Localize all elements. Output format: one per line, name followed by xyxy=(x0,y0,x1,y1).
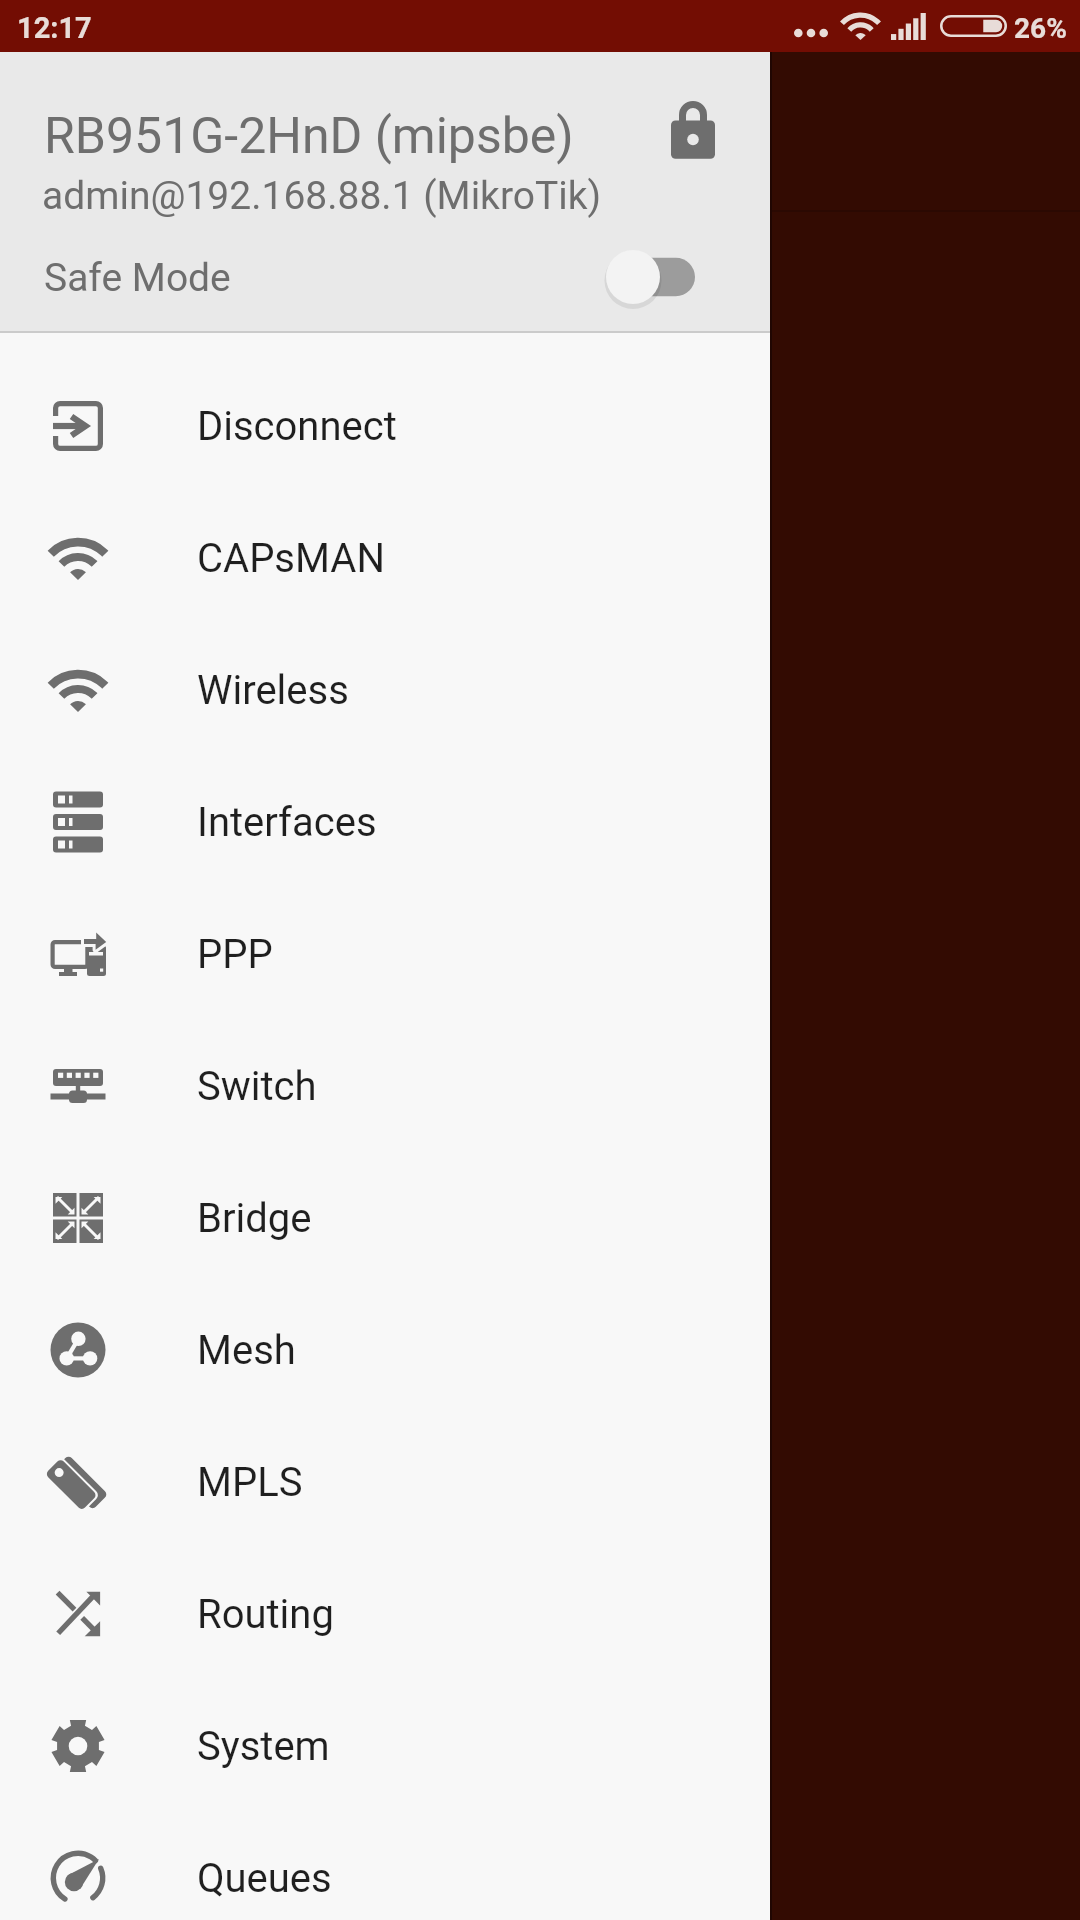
staticText: Queues xyxy=(197,1855,332,1902)
staticText: RB951G-2HnD (mipsbe) xyxy=(44,107,574,166)
staticText: MPLS xyxy=(197,1459,303,1506)
staticText: CAPsMAN xyxy=(197,535,385,582)
staticText: Interfaces xyxy=(197,799,377,846)
staticText: Mesh xyxy=(197,1327,296,1374)
button[interactable]: Wireless xyxy=(0,624,770,756)
staticText: Disconnect xyxy=(197,403,397,450)
button[interactable]: System xyxy=(0,1680,770,1812)
button[interactable]: Routing xyxy=(0,1548,770,1680)
button[interactable]: Queues xyxy=(0,1812,770,1920)
staticText: Bridge xyxy=(197,1195,312,1242)
button[interactable]: Interfaces xyxy=(0,756,770,888)
staticText: System xyxy=(197,1723,330,1770)
button[interactable]: Disconnect xyxy=(0,360,770,492)
button[interactable]: CAPsMAN xyxy=(0,492,770,624)
button[interactable]: Secure connection xyxy=(649,78,737,182)
staticText: Wireless xyxy=(197,667,349,714)
staticText: admin@192.168.88.1 (MikroTik) xyxy=(42,173,602,219)
staticText: Safe Mode xyxy=(44,255,231,301)
button[interactable]: MPLS xyxy=(0,1416,770,1548)
staticText: 26% xyxy=(1014,12,1067,45)
button[interactable]: Bridge xyxy=(0,1152,770,1284)
staticText: 12:17 xyxy=(17,11,92,45)
button[interactable]: Safe Mode toggle xyxy=(581,221,721,333)
staticText: Switch xyxy=(197,1063,317,1110)
staticText: Routing xyxy=(197,1591,334,1638)
button[interactable]: PPP xyxy=(0,888,770,1020)
staticText: PPP xyxy=(197,931,273,978)
button[interactable]: Mesh xyxy=(0,1284,770,1416)
button[interactable]: Switch xyxy=(0,1020,770,1152)
